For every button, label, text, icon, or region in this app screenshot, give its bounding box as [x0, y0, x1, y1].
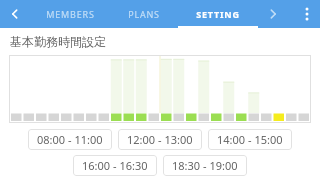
staticText: 08:00 - 11:00: [37, 132, 103, 147]
staticText: MEMBERS: [46, 8, 95, 20]
button[interactable]: Back: [0, 0, 30, 28]
staticText: 14:00 - 15:00: [217, 132, 283, 147]
button[interactable]: 18:30 - 19:00: [163, 155, 247, 176]
button[interactable]: 08:00 - 11:00: [28, 129, 112, 150]
button[interactable]: 16:00 - 16:30: [73, 155, 157, 176]
staticText: 12:00 - 13:00: [127, 132, 193, 147]
staticText: PLANS: [128, 8, 160, 20]
button[interactable]: 12:00 - 13:00: [118, 129, 202, 150]
button[interactable]: SETTING: [178, 0, 258, 28]
button[interactable]: Next: [258, 0, 288, 28]
staticText: 基本勤務時間設定: [10, 34, 106, 49]
staticText: 18:30 - 19:00: [172, 158, 238, 173]
button[interactable]: More options: [294, 0, 320, 28]
button[interactable]: MEMBERS: [30, 0, 110, 28]
button[interactable]: 14:00 - 15:00: [208, 129, 292, 150]
staticText: SETTING: [196, 8, 240, 20]
button[interactable]: PLANS: [110, 0, 178, 28]
staticText: 16:00 - 16:30: [82, 158, 148, 173]
